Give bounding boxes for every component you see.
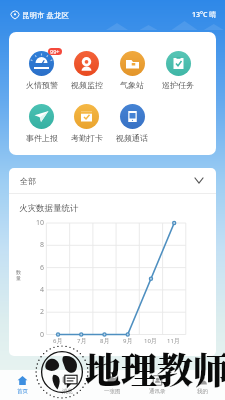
staticText: 考勤打卡: [71, 133, 103, 143]
staticText: 巡护任务: [162, 80, 194, 90]
button[interactable]: 一张图: [90, 370, 135, 400]
staticText: 全部: [20, 176, 36, 186]
button[interactable]: 通讯录: [135, 370, 180, 400]
staticText: 11月: [167, 337, 180, 345]
staticText: 0: [39, 330, 44, 340]
button[interactable]: 气象站: [109, 51, 155, 90]
button[interactable]: 全部: [9, 168, 216, 193]
staticText: 8月: [100, 337, 110, 345]
staticText: 视频监控: [71, 80, 103, 90]
staticText: 2: [39, 307, 44, 317]
staticText: 消息: [62, 388, 73, 395]
staticText: 气象站: [120, 80, 144, 90]
staticText: 13°C 晴: [192, 10, 217, 20]
staticText: 9月: [123, 337, 133, 345]
staticText: 8: [39, 240, 44, 250]
staticText: 6月: [53, 337, 63, 345]
button[interactable]: 消息: [45, 370, 90, 400]
button[interactable]: 我的: [180, 370, 225, 400]
button[interactable]: 巡护任务: [155, 51, 201, 90]
staticText: 4: [39, 285, 44, 295]
button[interactable]: 99+: [19, 51, 64, 90]
staticText: 我的: [197, 388, 208, 395]
staticText: 10: [35, 218, 44, 228]
staticText: 数: [16, 269, 21, 275]
staticText: 昆明市 盘龙区: [22, 10, 69, 20]
staticText: 事件上报: [26, 133, 58, 143]
button[interactable]: 视频通话: [109, 104, 155, 143]
staticText: 地理教师: [85, 343, 225, 395]
staticText: 10月: [144, 337, 157, 345]
button[interactable]: 首页: [0, 370, 45, 400]
staticText: 6: [39, 263, 44, 273]
other: Location: [11, 11, 19, 19]
staticText: 7月: [77, 337, 87, 345]
staticText: 一张图: [104, 388, 121, 395]
button[interactable]: 事件上报: [19, 104, 64, 143]
staticText: 火情预警: [26, 80, 58, 90]
staticText: 99+: [50, 48, 60, 55]
staticText: 量: [16, 275, 21, 281]
staticText: 火灾数据量统计: [19, 203, 79, 214]
staticText: 通讯录: [149, 388, 166, 395]
staticText: 首页: [17, 388, 28, 395]
staticText: 视频通话: [116, 133, 148, 143]
button[interactable]: 视频监控: [64, 51, 109, 90]
button[interactable]: 考勤打卡: [64, 104, 109, 143]
